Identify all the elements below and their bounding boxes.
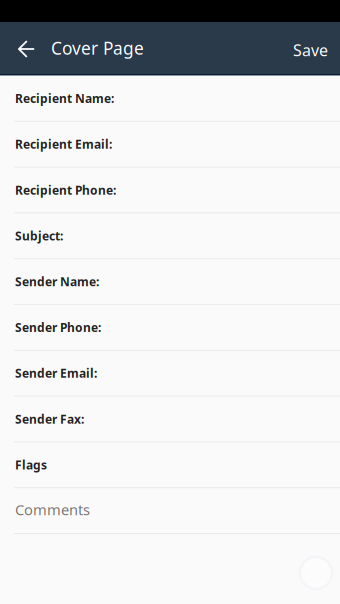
button[interactable]: Recipient Phone: xyxy=(0,168,340,213)
staticText: Save xyxy=(293,39,328,61)
button[interactable]: Flags xyxy=(0,442,340,488)
staticText: Recipient Phone: xyxy=(15,182,116,198)
staticText: Sender Email: xyxy=(15,365,97,381)
staticText: Sender Name: xyxy=(15,274,99,289)
button[interactable]: Subject: xyxy=(0,213,340,259)
staticText: Sender Fax: xyxy=(15,411,84,427)
button[interactable]: Comments xyxy=(0,488,340,534)
button[interactable]: Sender Email: xyxy=(0,351,340,397)
button[interactable]: Sender Name: xyxy=(0,259,340,305)
button[interactable]: Back xyxy=(0,22,53,74)
staticText: Flags xyxy=(15,457,47,473)
staticText: Comments xyxy=(15,500,90,519)
button[interactable]: Recipient Email: xyxy=(0,122,340,168)
staticText: Subject: xyxy=(15,228,63,244)
staticText: Sender Phone: xyxy=(15,319,101,335)
button[interactable]: Recipient Name: xyxy=(0,76,340,122)
staticText: Recipient Name: xyxy=(15,90,114,106)
staticText: Recipient Email: xyxy=(15,136,112,152)
staticText: Cover Page xyxy=(51,36,144,59)
button[interactable]: Sender Phone: xyxy=(0,305,340,351)
button[interactable]: Sender Fax: xyxy=(0,397,340,442)
button[interactable]: Save xyxy=(277,22,340,74)
